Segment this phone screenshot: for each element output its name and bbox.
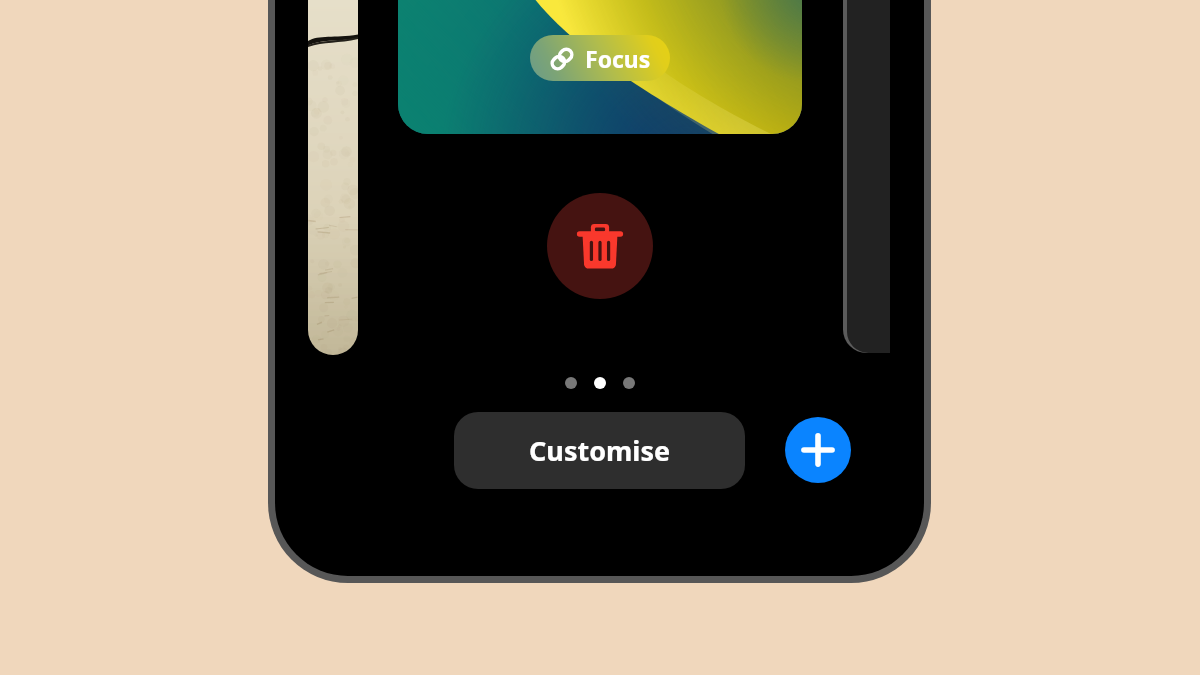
staticText: Focus [585, 43, 651, 74]
button[interactable]: Customise [454, 412, 745, 489]
staticText: Customise [529, 432, 671, 469]
button[interactable]: Beach wallpaper [308, 0, 358, 355]
button[interactable]: Page 2, selected [594, 377, 606, 389]
button[interactable]: Delete wallpaper [547, 193, 653, 299]
button[interactable]: Page 1 [565, 377, 577, 389]
button[interactable]: Focus [530, 35, 670, 81]
button[interactable]: Add wallpaper [785, 417, 851, 483]
button[interactable]: Current wallpaper preview [398, 0, 802, 134]
button[interactable]: Dark wallpaper [843, 0, 890, 353]
button[interactable]: Page 3 [623, 377, 635, 389]
